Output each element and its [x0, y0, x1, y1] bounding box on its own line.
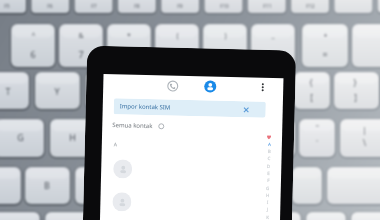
- staticText: F: [267, 177, 270, 183]
- button[interactable]: More options: [255, 80, 269, 94]
- staticText: N: [94, 179, 101, 189]
- staticText: C: [267, 155, 271, 161]
- staticText: |: [362, 125, 367, 135]
- staticText: [: [310, 92, 313, 102]
- staticText: J: [266, 206, 268, 212]
- staticText: O: [204, 85, 212, 95]
- staticText: A: [268, 141, 271, 147]
- staticText: ;: [269, 138, 272, 148]
- staticText: =: [322, 48, 328, 58]
- staticText: +: [323, 31, 328, 41]
- staticText: D: [266, 163, 270, 169]
- staticText: B: [44, 179, 50, 189]
- button[interactable]: Alphabet index: [261, 134, 275, 220]
- staticText: E: [267, 170, 270, 176]
- staticText: K: [266, 214, 269, 220]
- staticText: F12: [306, 3, 315, 10]
- staticText: 0: [222, 48, 228, 58]
- staticText: }: [353, 77, 357, 87]
- staticText: (: [176, 31, 179, 41]
- button[interactable]: [101, 154, 282, 187]
- staticText: G: [17, 131, 24, 141]
- staticText: *: [127, 31, 131, 41]
- staticText: _: [271, 31, 275, 41]
- staticText: ): [224, 31, 227, 41]
- staticText: H: [266, 192, 270, 198]
- staticText: 6: [30, 48, 36, 58]
- staticText: H: [69, 131, 76, 141]
- staticText: Semua kontak: [112, 121, 153, 130]
- staticText: {: [309, 77, 313, 87]
- staticText: &: [78, 31, 84, 41]
- staticText: Impor kontak SIM: [120, 102, 171, 111]
- button[interactable]: Contacts tab: [201, 77, 219, 96]
- staticText: I: [266, 199, 268, 205]
- staticText: A: [114, 141, 118, 148]
- staticText: ^: [31, 31, 36, 41]
- staticText: F7: [91, 3, 97, 10]
- staticText: F5: [4, 3, 10, 10]
- staticText: F11: [263, 3, 272, 10]
- button[interactable]: Semua kontak: [112, 118, 164, 133]
- staticText: B: [268, 148, 271, 154]
- staticText: \: [363, 137, 366, 147]
- staticText: -: [272, 48, 275, 58]
- staticText: F9: [177, 3, 183, 10]
- button[interactable]: Calls tab: [163, 76, 181, 95]
- staticText: ': [316, 138, 318, 148]
- staticText: ": [316, 123, 319, 133]
- staticText: F6: [47, 3, 53, 10]
- staticText: Y: [54, 85, 60, 95]
- staticText: F10: [220, 3, 229, 10]
- staticText: 7: [78, 48, 84, 58]
- button[interactable]: Impor kontak SIM: [114, 98, 266, 118]
- button[interactable]: Dismiss: [243, 106, 250, 113]
- staticText: ]: [354, 92, 357, 102]
- staticText: G: [266, 185, 270, 191]
- button[interactable]: [100, 187, 281, 220]
- staticText: F8: [134, 3, 140, 10]
- staticText: T: [5, 85, 11, 95]
